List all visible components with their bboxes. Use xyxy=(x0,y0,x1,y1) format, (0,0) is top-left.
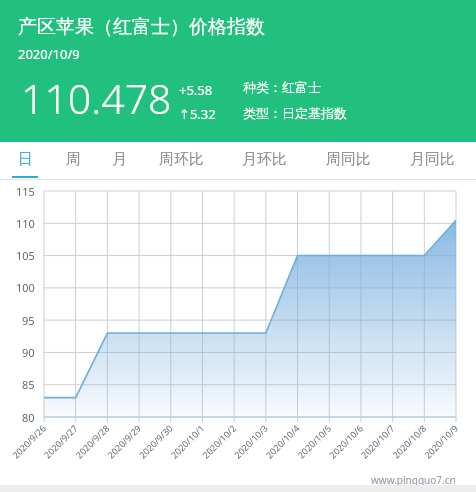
button[interactable]: 周 xyxy=(58,142,88,180)
staticText: 日 xyxy=(18,150,33,169)
button[interactable]: 月 xyxy=(104,142,134,180)
staticText: 2020/10/9 xyxy=(18,45,80,63)
button[interactable]: 周同比 xyxy=(319,142,377,180)
staticText: 周同比 xyxy=(326,150,371,169)
staticText: 周环比 xyxy=(159,150,204,169)
staticText: 产区苹果（红富士）价格指数 xyxy=(18,15,265,39)
staticText: 月 xyxy=(112,150,127,169)
staticText: 周 xyxy=(66,150,81,169)
staticText: 月同比 xyxy=(410,150,455,169)
button[interactable]: 月同比 xyxy=(403,142,461,180)
staticText: ↑5.32 xyxy=(179,105,216,123)
button[interactable]: 月环比 xyxy=(235,142,293,180)
button[interactable]: 日 xyxy=(10,142,40,180)
staticText: 月环比 xyxy=(242,150,287,169)
button[interactable]: 周环比 xyxy=(152,142,210,180)
staticText: 种类：红富士 xyxy=(243,79,321,95)
staticText: 110.478 xyxy=(21,70,172,126)
staticText: 类型：日定基指数 xyxy=(243,105,347,121)
staticText: +5.58 xyxy=(179,81,213,99)
